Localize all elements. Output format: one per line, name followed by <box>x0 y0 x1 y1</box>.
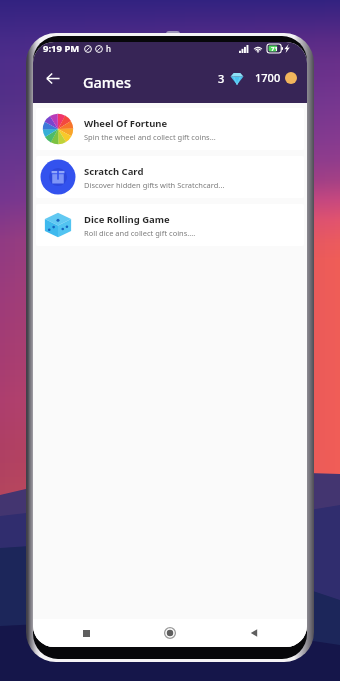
staticText: 3 <box>218 71 225 86</box>
button[interactable]: Recents <box>73 620 99 646</box>
staticText: 1700 <box>255 70 281 85</box>
button[interactable]: Dice Rolling Game <box>36 204 304 246</box>
staticText: Spin the wheel and collect gift coins... <box>84 132 216 142</box>
button[interactable]: Scratch Card <box>36 156 304 198</box>
button[interactable]: Wheel Of Fortune <box>36 108 304 150</box>
staticText: Discover hidden gifts with Scratchcard..… <box>84 180 225 190</box>
staticText: 9:19 PM <box>43 42 80 55</box>
button[interactable]: 3 <box>216 64 246 91</box>
button[interactable]: Back <box>40 65 66 91</box>
staticText: h <box>106 43 111 54</box>
staticText: Dice Rolling Game <box>84 213 170 226</box>
button[interactable]: Back <box>241 620 267 646</box>
staticText: Roll dice and collect gift coins.... <box>84 228 196 238</box>
button[interactable]: 1700 <box>253 64 299 91</box>
staticText: Scratch Card <box>84 165 144 178</box>
button[interactable]: Home <box>157 620 183 646</box>
staticText: 71 <box>271 45 278 53</box>
staticText: Games <box>83 72 131 92</box>
staticText: Wheel Of Fortune <box>84 117 168 130</box>
